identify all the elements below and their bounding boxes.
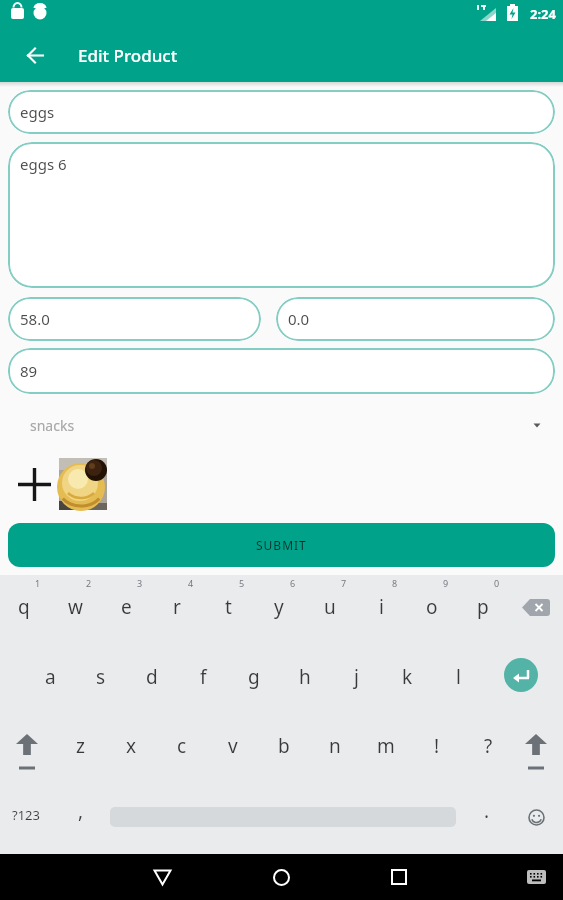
staticText: j (354, 664, 359, 690)
button[interactable]: n (315, 726, 355, 766)
staticText: 2:24 (530, 5, 556, 23)
button[interactable]: c (162, 726, 202, 766)
button[interactable]: i (361, 587, 401, 627)
button[interactable] (504, 658, 538, 692)
button[interactable]: e (106, 587, 146, 627)
staticText: v (228, 733, 238, 759)
button[interactable]: ?123 (4, 795, 48, 835)
staticText: . (484, 798, 490, 824)
button[interactable]: q (4, 587, 44, 627)
staticText: 89 (20, 361, 38, 381)
staticText: eggs 6 (20, 154, 67, 174)
button[interactable]: r (157, 587, 197, 627)
button[interactable]: ! (417, 726, 457, 766)
button[interactable]: snacks (0, 394, 563, 456)
staticText: SUBMIT (256, 537, 307, 553)
staticText: g (248, 664, 260, 690)
staticText: 58.0 (20, 309, 50, 329)
button[interactable] (7, 723, 47, 771)
button[interactable] (142, 857, 182, 897)
staticText: i (379, 594, 384, 620)
button[interactable] (516, 587, 556, 627)
button[interactable]: eggs (8, 90, 555, 134)
staticText: 0 (494, 577, 500, 589)
button[interactable] (261, 857, 301, 897)
button[interactable]: d (132, 657, 172, 697)
staticText: Edit Product (78, 44, 178, 67)
button[interactable]: SUBMIT (8, 523, 555, 567)
staticText: snacks (30, 416, 75, 435)
button[interactable]: , (61, 791, 101, 831)
button[interactable] (517, 858, 555, 896)
staticText: l (456, 664, 461, 690)
staticText: n (329, 733, 341, 759)
button[interactable]: v (213, 726, 253, 766)
staticText: q (18, 594, 30, 620)
button[interactable]: g (234, 657, 274, 697)
staticText: 1 (35, 577, 41, 589)
button[interactable]: t (208, 587, 248, 627)
staticText: 0.0 (288, 309, 310, 329)
staticText: b (278, 733, 290, 759)
button[interactable] (379, 857, 419, 897)
staticText: ?123 (12, 806, 40, 824)
staticText: w (68, 594, 83, 620)
staticText: d (146, 664, 158, 690)
staticText: 9 (443, 577, 449, 589)
staticText: , (78, 798, 84, 824)
staticText: ? (484, 733, 493, 759)
staticText: t (225, 594, 232, 620)
staticText: 3 (137, 577, 143, 589)
button[interactable]: eggs 6 (8, 142, 555, 288)
button[interactable]: l (438, 657, 478, 697)
staticText: k (402, 664, 413, 690)
staticText: f (200, 664, 207, 690)
staticText: r (173, 594, 181, 620)
button[interactable]: ? (468, 726, 508, 766)
staticText: z (76, 733, 85, 759)
button[interactable]: u (310, 587, 350, 627)
staticText: p (477, 594, 489, 620)
button[interactable] (519, 800, 553, 834)
button[interactable] (16, 36, 54, 74)
button[interactable]: 89 (8, 348, 555, 394)
staticText: s (96, 664, 106, 690)
button[interactable] (14, 464, 54, 504)
button[interactable] (516, 723, 556, 771)
staticText: 8 (392, 577, 398, 589)
button[interactable]: f (183, 657, 223, 697)
staticText: 5 (239, 577, 245, 589)
button[interactable]: k (387, 657, 427, 697)
button[interactable]: b (264, 726, 304, 766)
button[interactable]: 58.0 (8, 297, 261, 341)
staticText: c (177, 733, 187, 759)
staticText: x (126, 733, 137, 759)
staticText: o (426, 594, 438, 620)
button[interactable]: . (467, 791, 507, 831)
staticText: m (377, 733, 395, 759)
button[interactable]: a (30, 657, 70, 697)
button[interactable]: o (412, 587, 452, 627)
staticText: 4 (188, 577, 194, 589)
staticText: eggs (20, 102, 55, 122)
staticText: y (274, 594, 284, 620)
staticText: e (121, 594, 132, 620)
button[interactable]: h (285, 657, 325, 697)
button[interactable]: j (336, 657, 376, 697)
staticText: a (45, 664, 56, 690)
button[interactable]: x (111, 726, 151, 766)
button[interactable] (59, 458, 107, 510)
button[interactable]: z (60, 726, 100, 766)
staticText: ! (434, 733, 440, 759)
button[interactable]: w (55, 587, 95, 627)
button[interactable]: 0.0 (276, 297, 555, 341)
button[interactable]: p (463, 587, 503, 627)
staticText: u (324, 594, 336, 620)
staticText: 2 (86, 577, 92, 589)
button[interactable]: m (366, 726, 406, 766)
button[interactable]: y (259, 587, 299, 627)
button[interactable]: s (81, 657, 121, 697)
staticText: 7 (341, 577, 347, 589)
staticText: h (299, 664, 311, 690)
